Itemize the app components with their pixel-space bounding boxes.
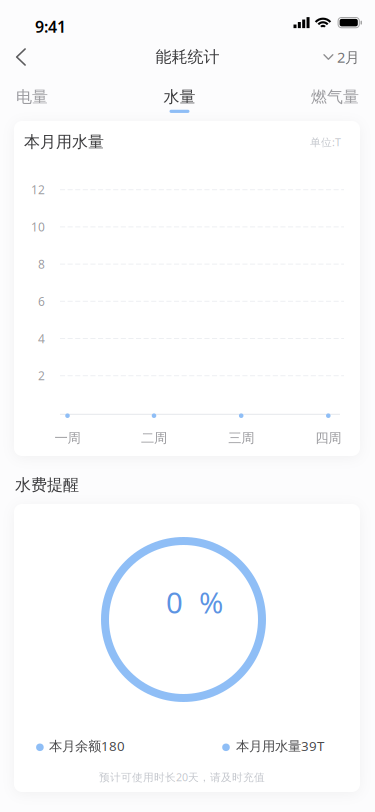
staticText: 12 [31, 182, 45, 198]
staticText: 单位:T [310, 135, 341, 149]
button[interactable]: 电量 [16, 87, 48, 113]
staticText: 燃气量 [311, 87, 359, 107]
staticText: 本月用水量39T [236, 737, 324, 755]
staticText: 一周 [54, 430, 80, 446]
staticText: 水量 [163, 87, 195, 107]
staticText: 2月 [337, 47, 360, 67]
staticText: 9:41 [35, 16, 66, 37]
staticText: 本月用水量 [24, 132, 104, 152]
button[interactable]: 返回 [5, 40, 37, 74]
staticText: 4 [38, 330, 45, 346]
staticText: 本月余额180 [49, 737, 125, 755]
staticText: 能耗统计 [155, 47, 219, 67]
staticText: 8 [38, 256, 45, 272]
staticText: 电量 [16, 87, 48, 107]
staticText: 6 [38, 293, 45, 309]
staticText: 0 % [166, 582, 223, 621]
button[interactable]: 燃气量 [311, 87, 359, 113]
staticText: 四周 [315, 430, 341, 446]
staticText: 三周 [228, 430, 254, 446]
staticText: 二周 [141, 430, 167, 446]
staticText: 预计可使用时长20天，请及时充值 [99, 770, 265, 784]
button[interactable]: 2月 [323, 40, 360, 74]
staticText: 2 [38, 368, 45, 384]
button[interactable]: 水量 [163, 87, 195, 113]
staticText: 水费提醒 [15, 475, 79, 495]
staticText: 10 [31, 219, 45, 235]
